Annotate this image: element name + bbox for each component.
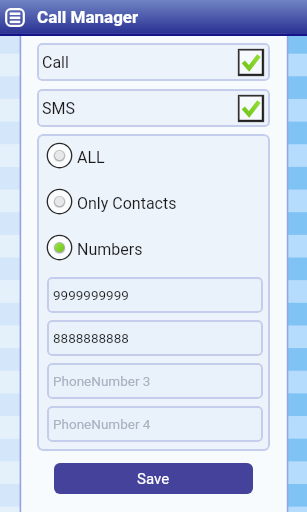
staticText: ALL xyxy=(77,148,105,167)
button[interactable]: Open navigation menu xyxy=(5,8,25,27)
staticText: SMS xyxy=(42,99,75,118)
button[interactable]: SMS xyxy=(37,89,270,127)
staticText: 8888888888 xyxy=(53,330,129,346)
staticText: Numbers xyxy=(77,240,143,259)
button[interactable]: 9999999999 xyxy=(47,277,263,313)
staticText: Call Manager xyxy=(37,7,139,27)
button[interactable]: Save xyxy=(54,463,253,494)
staticText: Only Contacts xyxy=(77,194,177,213)
staticText: Save xyxy=(137,470,170,488)
button[interactable]: ALL xyxy=(37,142,270,169)
staticText: 9999999999 xyxy=(53,287,129,303)
staticText: Call xyxy=(42,53,69,72)
button[interactable]: Call xyxy=(37,43,270,81)
button[interactable]: PhoneNumber 4 xyxy=(47,406,263,442)
button[interactable]: PhoneNumber 3 xyxy=(47,363,263,399)
button[interactable]: Only Contacts xyxy=(37,188,270,215)
staticText: PhoneNumber 3 xyxy=(53,373,151,389)
staticText: PhoneNumber 4 xyxy=(53,416,151,432)
button[interactable]: Numbers xyxy=(37,234,270,261)
button[interactable]: 8888888888 xyxy=(47,320,263,356)
